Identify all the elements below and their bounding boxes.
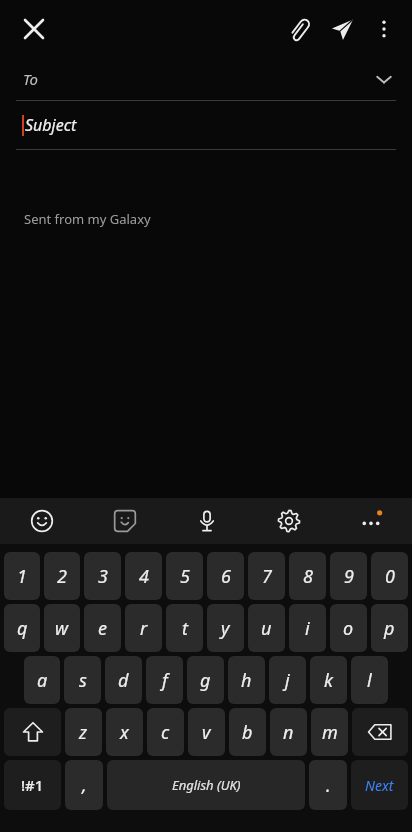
staticText: t	[182, 616, 188, 641]
staticText: p	[384, 616, 395, 641]
staticText: q	[17, 616, 28, 641]
staticText: f	[162, 668, 168, 693]
button[interactable]: Backspace	[352, 708, 408, 756]
button[interactable]: Subject	[0, 101, 412, 149]
staticText: 2	[57, 564, 67, 589]
staticText: ,	[82, 773, 87, 798]
button[interactable]: ,	[65, 760, 103, 810]
staticText: 1	[17, 564, 27, 589]
staticText: r	[140, 616, 148, 641]
button[interactable]: v	[188, 708, 225, 756]
staticText: l	[367, 668, 372, 693]
button[interactable]: c	[147, 708, 184, 756]
staticText: h	[241, 668, 252, 693]
button[interactable]: f	[146, 656, 183, 704]
button[interactable]: Keyboard settings	[248, 498, 330, 544]
staticText: 0	[385, 564, 395, 589]
button[interactable]: u	[248, 604, 285, 652]
button[interactable]: g	[187, 656, 224, 704]
button[interactable]: English (UK)	[107, 760, 305, 810]
button[interactable]: .	[309, 760, 347, 810]
staticText: 6	[221, 564, 231, 589]
staticText: m	[322, 720, 338, 745]
button[interactable]: l	[351, 656, 388, 704]
staticText: Subject	[25, 114, 77, 136]
staticText: s	[79, 668, 87, 693]
button[interactable]: m	[311, 708, 348, 756]
staticText: English (UK)	[172, 776, 241, 794]
button[interactable]: Close	[14, 9, 54, 49]
button[interactable]: 2	[44, 552, 80, 600]
button[interactable]: 0	[371, 552, 408, 600]
button[interactable]: p	[371, 604, 408, 652]
staticText: i	[305, 616, 310, 641]
button[interactable]: d	[105, 656, 142, 704]
staticText: u	[261, 616, 272, 641]
button[interactable]: w	[44, 604, 80, 652]
button[interactable]: e	[84, 604, 121, 652]
staticText: n	[283, 720, 294, 745]
staticText: y	[221, 616, 230, 641]
button[interactable]: o	[330, 604, 367, 652]
button[interactable]: To	[0, 58, 412, 100]
button[interactable]: j	[269, 656, 306, 704]
staticText: o	[343, 616, 354, 641]
button[interactable]: r	[125, 604, 162, 652]
staticText: 5	[180, 564, 190, 589]
button[interactable]: Voice input	[166, 498, 248, 544]
button[interactable]: q	[4, 604, 40, 652]
button[interactable]: z	[65, 708, 102, 756]
staticText: Next	[365, 776, 394, 795]
button[interactable]: 5	[166, 552, 203, 600]
staticText: .	[326, 773, 331, 798]
button[interactable]: 4	[125, 552, 162, 600]
staticText: d	[118, 668, 129, 693]
button[interactable]: 9	[330, 552, 367, 600]
button[interactable]: 6	[207, 552, 244, 600]
staticText: b	[242, 720, 253, 745]
button[interactable]: x	[106, 708, 143, 756]
staticText: w	[55, 616, 69, 641]
button[interactable]: Shift	[4, 708, 61, 756]
staticText: x	[120, 720, 129, 745]
staticText: v	[202, 720, 211, 745]
staticText: 7	[262, 564, 272, 589]
button[interactable]: Attach	[276, 7, 320, 51]
button[interactable]: Stickers	[83, 498, 166, 544]
button[interactable]: 8	[289, 552, 326, 600]
staticText: !#1	[21, 775, 44, 795]
staticText: 8	[303, 564, 313, 589]
staticText: j	[285, 668, 290, 693]
staticText: k	[324, 668, 333, 693]
staticText: To	[23, 69, 38, 89]
button[interactable]: More	[330, 498, 412, 544]
staticText: z	[79, 720, 88, 745]
button[interactable]: k	[310, 656, 347, 704]
button[interactable]: !#1	[4, 760, 61, 810]
staticText: Sent from my Galaxy	[24, 210, 151, 228]
button[interactable]: 1	[4, 552, 40, 600]
button[interactable]: Emoji	[0, 498, 83, 544]
button[interactable]: a	[24, 656, 60, 704]
button[interactable]: t	[166, 604, 203, 652]
button[interactable]: Expand recipients	[366, 61, 402, 97]
button[interactable]: h	[228, 656, 265, 704]
button[interactable]: Send	[320, 7, 364, 51]
button[interactable]: 3	[84, 552, 121, 600]
button[interactable]: b	[229, 708, 266, 756]
button[interactable]: 7	[248, 552, 285, 600]
staticText: g	[200, 668, 211, 693]
button[interactable]: n	[270, 708, 307, 756]
button[interactable]: More options	[364, 9, 404, 49]
button[interactable]: i	[289, 604, 326, 652]
staticText: e	[98, 616, 107, 641]
staticText: 3	[98, 564, 108, 589]
staticText: a	[37, 668, 48, 693]
button[interactable]: Next	[351, 760, 408, 810]
button[interactable]: y	[207, 604, 244, 652]
staticText: 4	[139, 564, 149, 589]
staticText: 9	[344, 564, 354, 589]
button[interactable]: s	[64, 656, 101, 704]
staticText: c	[161, 720, 170, 745]
